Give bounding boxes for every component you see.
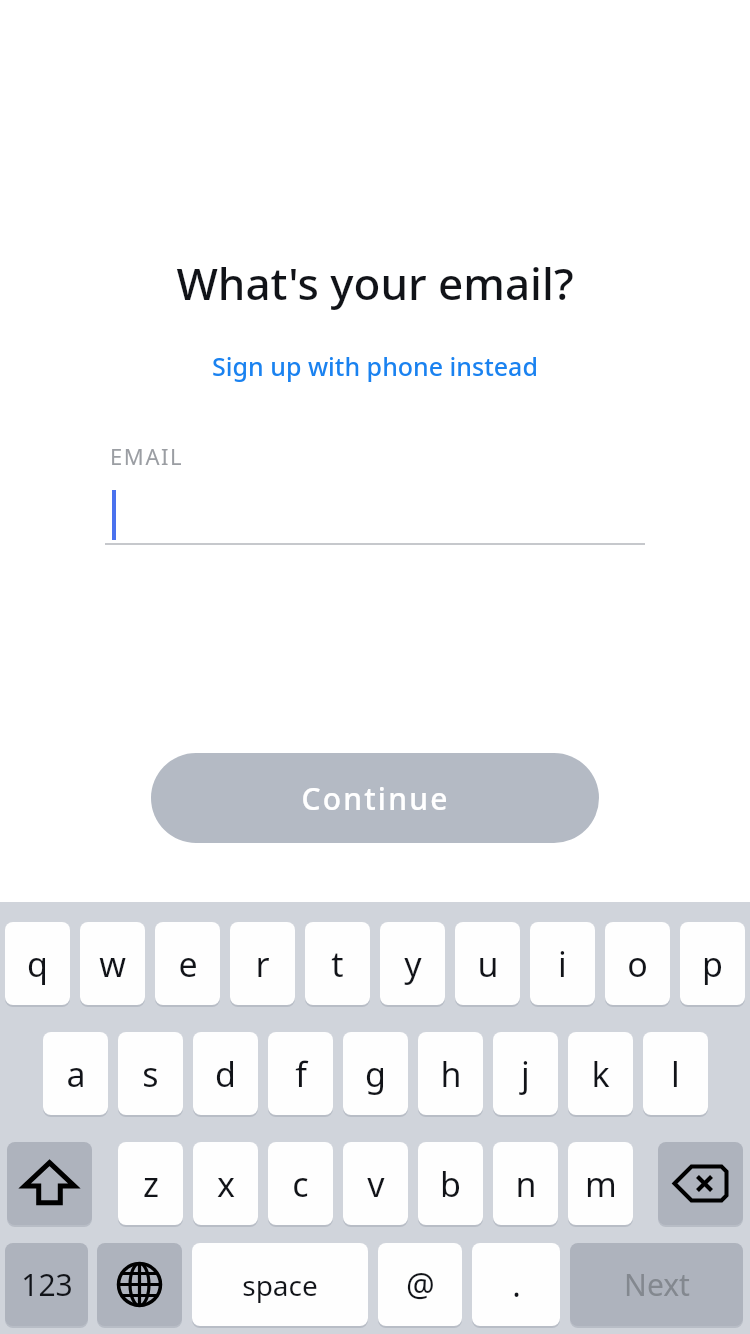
staticText: Sign up with phone instead [212, 349, 538, 383]
staticText: n [515, 1161, 537, 1207]
staticText: y [404, 941, 422, 987]
staticText: w [99, 941, 126, 987]
staticText: u [477, 941, 499, 987]
button[interactable]: u [455, 922, 520, 1005]
staticText: l [671, 1051, 680, 1097]
button[interactable]: t [305, 922, 370, 1005]
button[interactable]: Sign up with phone instead [212, 349, 538, 383]
staticText: d [215, 1051, 236, 1097]
button[interactable]: . [472, 1243, 560, 1326]
staticText: v [367, 1161, 385, 1207]
button[interactable]: q [5, 922, 70, 1005]
staticText: 123 [21, 1264, 73, 1305]
button[interactable]: @ [378, 1243, 462, 1326]
staticText: Continue [301, 778, 450, 819]
staticText: a [66, 1051, 86, 1097]
button[interactable]: j [493, 1032, 558, 1115]
staticText: f [295, 1051, 307, 1097]
staticText: i [558, 941, 567, 987]
staticText: EMAIL [110, 441, 184, 471]
staticText: b [440, 1161, 461, 1207]
button[interactable]: y [380, 922, 445, 1005]
staticText: c [292, 1161, 309, 1207]
button[interactable]: m [568, 1142, 633, 1225]
button[interactable]: Shift [7, 1142, 92, 1225]
button[interactable] [105, 485, 645, 545]
button[interactable]: s [118, 1032, 183, 1115]
staticText: r [255, 941, 270, 987]
button[interactable]: r [230, 922, 295, 1005]
button[interactable]: d [193, 1032, 258, 1115]
button[interactable]: w [80, 922, 145, 1005]
staticText: Next [624, 1264, 690, 1305]
staticText: p [702, 941, 723, 987]
button[interactable]: x [193, 1142, 258, 1225]
button[interactable]: a [43, 1032, 108, 1115]
button[interactable]: Switch keyboard [97, 1243, 182, 1326]
button[interactable]: n [493, 1142, 558, 1225]
button[interactable]: p [680, 922, 745, 1005]
staticText: What's your email? [176, 253, 574, 313]
staticText: h [440, 1051, 462, 1097]
button[interactable]: Continue [151, 753, 599, 843]
staticText: space [242, 1266, 318, 1304]
button[interactable]: c [268, 1142, 333, 1225]
button[interactable]: v [343, 1142, 408, 1225]
button[interactable]: o [605, 922, 670, 1005]
button[interactable]: space [192, 1243, 368, 1326]
button[interactable]: 123 [5, 1243, 88, 1326]
staticText: x [217, 1161, 235, 1207]
button[interactable]: g [343, 1032, 408, 1115]
button[interactable]: Next [570, 1243, 743, 1326]
button[interactable]: l [643, 1032, 708, 1115]
button[interactable]: i [530, 922, 595, 1005]
staticText: . [512, 1263, 521, 1307]
button[interactable]: h [418, 1032, 483, 1115]
button[interactable]: b [418, 1142, 483, 1225]
staticText: @ [406, 1263, 435, 1307]
staticText: e [178, 941, 198, 987]
staticText: j [521, 1051, 530, 1097]
button[interactable]: e [155, 922, 220, 1005]
staticText: s [142, 1051, 159, 1097]
button[interactable]: Backspace [658, 1142, 743, 1225]
button[interactable]: z [118, 1142, 183, 1225]
staticText: q [27, 941, 48, 987]
staticText: g [365, 1051, 386, 1097]
button[interactable]: f [268, 1032, 333, 1115]
staticText: o [627, 941, 648, 987]
button[interactable]: k [568, 1032, 633, 1115]
staticText: z [143, 1161, 159, 1207]
staticText: k [591, 1051, 610, 1097]
staticText: t [331, 941, 344, 987]
staticText: m [585, 1161, 617, 1207]
